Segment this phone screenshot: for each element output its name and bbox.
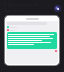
button[interactable]: Open app: [54, 5, 61, 12]
button[interactable]: [7, 32, 57, 49]
button[interactable]: Search: [26, 18, 39, 20]
